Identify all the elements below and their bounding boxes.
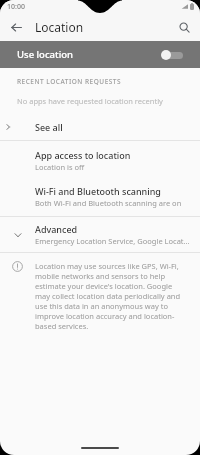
button[interactable]: Use location [0, 41, 200, 68]
staticText: App access to location [35, 149, 131, 161]
staticText: No apps have requested location recently [17, 96, 163, 106]
staticText: Both Wi-Fi and Bluetooth scanning are on [35, 198, 182, 208]
staticText: Use location [17, 48, 161, 61]
staticText: Advanced [35, 223, 78, 235]
staticText: Location [35, 19, 84, 35]
staticText: Location is off [35, 162, 85, 172]
button[interactable]: Advanced [0, 217, 200, 252]
button[interactable]: App access to location [0, 144, 200, 177]
button[interactable]: Search [174, 17, 194, 37]
staticText: Location may use sources like GPS, Wi-Fi… [35, 261, 188, 331]
staticText: 10:00 [7, 2, 25, 12]
button[interactable]: Wi-Fi and Bluetooth scanning [0, 180, 200, 213]
staticText: Emergency Location Service, Google Locat… [35, 236, 190, 246]
staticText: Wi-Fi and Bluetooth scanning [35, 185, 161, 197]
button[interactable]: Back [6, 17, 26, 37]
staticText: See all [35, 121, 63, 133]
button[interactable]: See all [0, 114, 200, 140]
staticText: RECENT LOCATION REQUESTS [17, 77, 122, 86]
